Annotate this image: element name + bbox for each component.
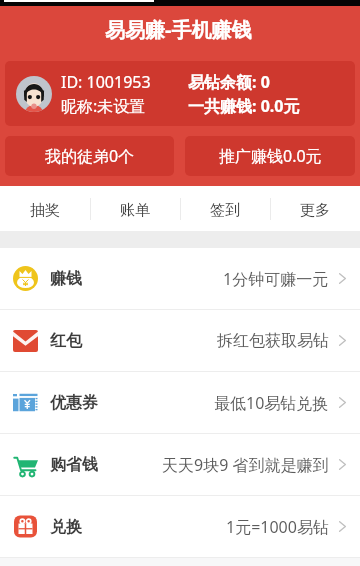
staticText: 拆红包获取易钻 <box>217 331 329 351</box>
staticText: 更多 <box>300 201 330 220</box>
staticText: 赚钱 <box>50 269 82 289</box>
staticText: 1分钟可赚一元 <box>223 268 329 290</box>
staticText: 红包 <box>50 331 82 351</box>
button[interactable]: 赚钱 <box>0 248 360 310</box>
staticText: 推广赚钱0.0元 <box>219 145 322 167</box>
button[interactable]: 抽奖 <box>0 186 90 231</box>
staticText: 最低10易钻兑换 <box>214 392 329 414</box>
button[interactable]: 更多 <box>270 186 360 231</box>
button[interactable]: 推广赚钱0.0元 <box>185 136 355 176</box>
staticText: 兑换 <box>50 517 82 537</box>
staticText: 我的徒弟0个 <box>45 145 135 167</box>
button[interactable]: 优惠券 <box>0 372 360 434</box>
staticText: 签到 <box>210 201 240 220</box>
staticText: 一共赚钱: 0.0元 <box>188 95 300 117</box>
button[interactable]: ID: 1001953 <box>5 61 355 126</box>
staticText: 抽奖 <box>30 201 60 220</box>
staticText: 账单 <box>120 201 150 220</box>
staticText: 昵称:未设置 <box>61 95 146 117</box>
button[interactable]: 红包 <box>0 310 360 372</box>
staticText: ID: 1001953 <box>61 71 151 93</box>
staticText: 优惠券 <box>50 393 98 413</box>
staticText: 易易赚-手机赚钱 <box>105 16 252 43</box>
button[interactable]: 我的徒弟0个 <box>5 136 174 176</box>
staticText: 易钻余额: 0 <box>188 71 270 93</box>
staticText: 天天9块9 省到就是赚到 <box>162 454 329 476</box>
staticText: 1元=1000易钻 <box>226 516 329 538</box>
button[interactable]: 兑换 <box>0 496 360 558</box>
button[interactable]: 签到 <box>180 186 270 231</box>
button[interactable]: 购省钱 <box>0 434 360 496</box>
button[interactable]: 账单 <box>90 186 180 231</box>
staticText: 购省钱 <box>50 455 98 475</box>
